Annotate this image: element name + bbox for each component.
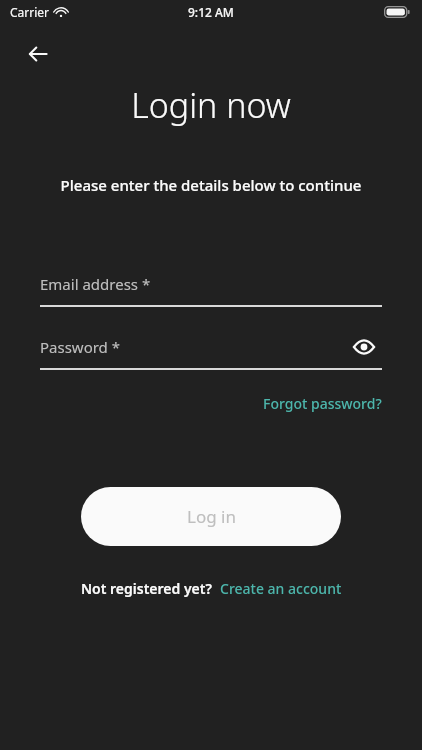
button[interactable]: Back bbox=[14, 30, 62, 78]
staticText: Log in bbox=[187, 505, 236, 528]
staticText: Email address * bbox=[40, 274, 151, 294]
staticText: Please enter the details below to contin… bbox=[0, 175, 422, 195]
staticText: Password * bbox=[40, 337, 121, 357]
staticText: Carrier bbox=[10, 4, 50, 20]
button[interactable]: Forgot password? bbox=[259, 390, 386, 417]
button[interactable]: Show password bbox=[346, 329, 382, 365]
staticText: 9:12 AM bbox=[188, 4, 234, 20]
staticText: Forgot password? bbox=[263, 394, 382, 413]
button[interactable]: Create an account bbox=[220, 579, 342, 598]
staticText: Create an account bbox=[220, 579, 342, 598]
staticText: Login now bbox=[0, 82, 422, 128]
button[interactable]: Password * bbox=[40, 325, 382, 368]
button[interactable]: Email address * bbox=[40, 262, 382, 305]
button[interactable]: Log in bbox=[81, 487, 341, 546]
staticText: Not registered yet? bbox=[81, 579, 212, 598]
